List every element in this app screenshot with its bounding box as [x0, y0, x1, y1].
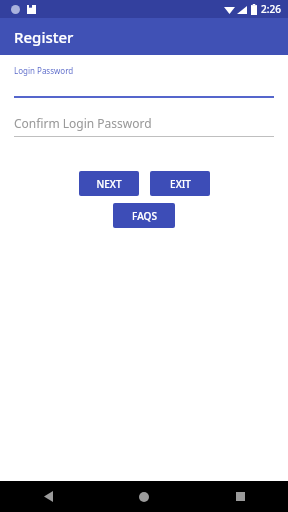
button[interactable]: Confirm Login Password — [14, 115, 274, 137]
button[interactable]: Home — [96, 481, 192, 512]
staticText: EXIT — [170, 177, 191, 191]
button[interactable]: Recent apps — [192, 481, 288, 512]
button[interactable]: Login Password — [14, 65, 274, 98]
staticText: 2:26 — [261, 2, 281, 16]
staticText: Register — [14, 27, 74, 47]
button[interactable]: EXIT — [150, 171, 210, 196]
staticText: Login Password — [14, 65, 74, 76]
button[interactable]: Back — [0, 481, 96, 512]
staticText: FAQS — [132, 209, 157, 223]
button[interactable]: NEXT — [79, 171, 139, 196]
staticText: Confirm Login Password — [14, 115, 152, 131]
staticText: NEXT — [96, 177, 122, 191]
button[interactable]: FAQS — [113, 203, 175, 228]
